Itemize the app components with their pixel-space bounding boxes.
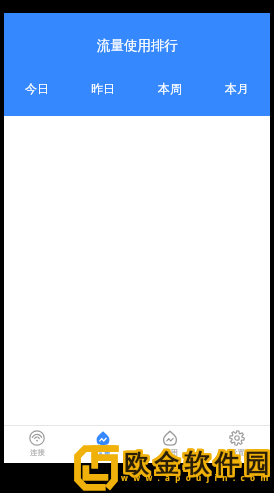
staticText: 欧金软件园 <box>124 450 274 481</box>
button[interactable]: 本周 <box>136 68 203 109</box>
staticText: 欧金软件园 <box>123 450 274 481</box>
staticText: 欧金软件园 <box>122 446 273 477</box>
staticText: 流量 <box>96 448 111 457</box>
staticText: 欧金软件园 <box>126 447 274 478</box>
staticText: 欧金软件园 <box>122 448 273 479</box>
staticText: 欧金软件园 <box>125 449 274 480</box>
staticText: 昨日 <box>91 81 115 96</box>
button[interactable]: 昨日 <box>70 68 136 109</box>
staticText: 欧金软件园 <box>123 446 274 477</box>
staticText: 欧金软件园 <box>125 450 274 481</box>
staticText: 今日 <box>25 81 49 96</box>
staticText: 本月 <box>225 81 249 96</box>
button[interactable]: 应用 <box>136 426 203 463</box>
staticText: 欧金软件园 <box>125 448 274 479</box>
staticText: 欧金软件园 <box>124 446 274 477</box>
staticText: 欧金软件园 <box>124 447 274 478</box>
staticText: 欧金软件园 <box>123 447 274 478</box>
staticText: 欧金软件园 <box>125 449 274 480</box>
button[interactable]: 本月 <box>203 68 270 109</box>
staticText: 设置 <box>230 448 245 457</box>
staticText: 流量使用排行 <box>97 37 178 54</box>
staticText: 欧金软件园 <box>124 448 274 479</box>
staticText: 欧金软件园 <box>122 449 273 480</box>
staticText: 连接 <box>30 448 45 457</box>
staticText: 欧金软件园 <box>125 447 274 478</box>
button[interactable]: 流量 <box>70 426 136 463</box>
staticText: 欧金软件园 <box>122 450 273 481</box>
staticText: 欧金软件园 <box>125 446 274 477</box>
staticText: 欧金软件园 <box>123 447 274 478</box>
button[interactable]: 设置 <box>203 426 270 463</box>
staticText: 欧金软件园 <box>126 448 274 479</box>
staticText: 欧金软件园 <box>123 449 274 480</box>
staticText: 欧金软件园 <box>126 446 274 477</box>
staticText: 欧金软件园 <box>125 447 274 478</box>
staticText: 欧金软件园 <box>122 447 273 478</box>
staticText: 欧金软件园 <box>123 448 274 479</box>
button[interactable]: 今日 <box>4 68 70 109</box>
staticText: 应用 <box>163 448 178 457</box>
staticText: 本周 <box>158 81 182 96</box>
staticText: 欧金软件园 <box>124 449 274 480</box>
staticText: 欧金软件园 <box>123 449 274 480</box>
staticText: 欧金软件园 <box>126 450 274 481</box>
button[interactable]: 连接 <box>4 426 70 463</box>
staticText: 欧金软件园 <box>126 449 274 480</box>
staticText: www.apoujin.com <box>121 472 274 483</box>
